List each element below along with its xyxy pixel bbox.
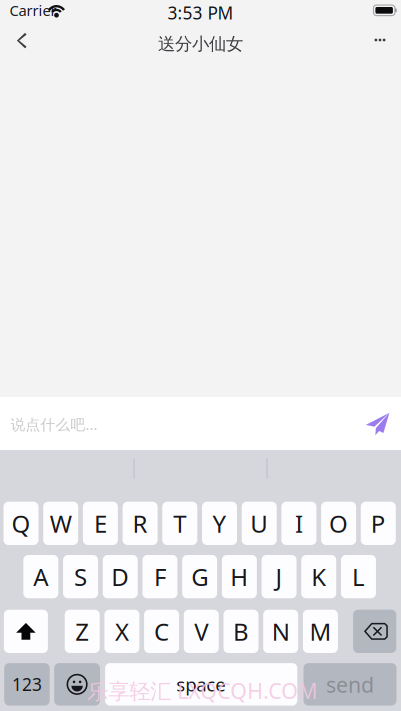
- staticText: R: [133, 507, 148, 539]
- button[interactable]: C: [144, 610, 179, 653]
- staticText: G: [191, 561, 208, 593]
- staticText: Y: [212, 507, 226, 539]
- button[interactable]: Shift: [4, 610, 48, 653]
- staticText: N: [272, 615, 290, 647]
- staticText: 123: [12, 673, 42, 696]
- staticText: 3:53 PM: [167, 1, 233, 24]
- staticText: E: [94, 507, 107, 539]
- button[interactable]: S: [63, 555, 98, 598]
- staticText: O: [329, 507, 348, 539]
- button[interactable]: Emoji: [54, 663, 100, 706]
- staticText: L: [352, 561, 365, 593]
- button[interactable]: A: [23, 555, 58, 598]
- staticText: P: [371, 507, 386, 539]
- staticText: Z: [75, 615, 89, 647]
- staticText: B: [233, 615, 249, 647]
- button[interactable]: G: [182, 555, 217, 598]
- staticText: U: [250, 507, 268, 539]
- button[interactable]: Z: [65, 610, 100, 653]
- button[interactable]: 123: [4, 663, 50, 706]
- button[interactable]: B: [223, 610, 258, 653]
- staticText: I: [295, 507, 303, 539]
- button[interactable]: E: [83, 502, 118, 545]
- staticText: A: [33, 561, 48, 593]
- staticText: J: [276, 561, 283, 593]
- button[interactable]: K: [301, 555, 336, 598]
- button[interactable]: X: [104, 610, 139, 653]
- button[interactable]: N: [263, 610, 298, 653]
- staticText: 送分小仙女: [158, 33, 243, 55]
- button[interactable]: P: [361, 502, 396, 545]
- staticText: H: [230, 561, 248, 593]
- button[interactable]: H: [222, 555, 257, 598]
- button[interactable]: Y: [202, 502, 237, 545]
- staticText: F: [154, 561, 166, 593]
- staticText: 乐享轻汇 LXQCQH.COM: [87, 676, 317, 705]
- staticText: Carrier: [9, 0, 56, 20]
- staticText: M: [309, 615, 331, 647]
- staticText: K: [311, 561, 326, 593]
- button[interactable]: L: [341, 555, 376, 598]
- button[interactable]: O: [321, 502, 356, 545]
- staticText: Q: [11, 507, 30, 539]
- button[interactable]: Q: [3, 502, 38, 545]
- staticText: C: [154, 615, 169, 647]
- staticText: S: [74, 561, 87, 593]
- button[interactable]: Delete: [353, 610, 396, 653]
- staticText: V: [194, 615, 208, 647]
- staticText: X: [115, 615, 129, 647]
- staticText: send: [326, 670, 374, 698]
- staticText: 说点什么吧...: [10, 414, 97, 434]
- button[interactable]: W: [43, 502, 78, 545]
- button[interactable]: U: [242, 502, 277, 545]
- button[interactable]: J: [262, 555, 297, 598]
- button[interactable]: T: [162, 502, 197, 545]
- staticText: T: [173, 507, 186, 539]
- staticText: D: [111, 561, 129, 593]
- staticText: space: [176, 672, 226, 697]
- button[interactable]: V: [184, 610, 219, 653]
- button[interactable]: More options: [357, 24, 401, 64]
- button[interactable]: M: [303, 610, 338, 653]
- staticText: W: [50, 507, 72, 539]
- button[interactable]: I: [281, 502, 316, 545]
- button[interactable]: send: [303, 663, 396, 706]
- button[interactable]: F: [142, 555, 177, 598]
- button[interactable]: space: [105, 663, 297, 706]
- button[interactable]: R: [123, 502, 158, 545]
- button[interactable]: D: [103, 555, 138, 598]
- button[interactable]: Send: [360, 406, 396, 442]
- button[interactable]: Back: [0, 24, 44, 64]
